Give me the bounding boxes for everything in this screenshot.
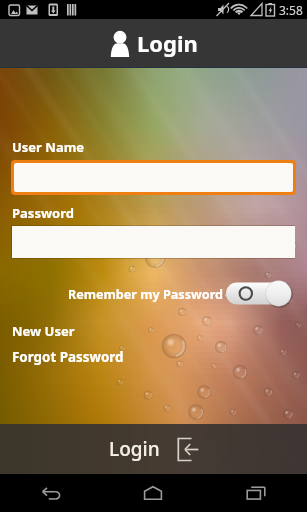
staticText: Remember my Password [68, 286, 223, 303]
staticText: Login [137, 28, 198, 58]
button[interactable]: New User [12, 322, 75, 340]
button[interactable] [226, 280, 292, 307]
button[interactable]: Forgot Password [12, 348, 124, 366]
staticText: User Name [12, 138, 85, 156]
staticText: Login [109, 436, 160, 462]
staticText: 3:58 [279, 2, 303, 18]
button[interactable]: Login [0, 424, 307, 474]
button[interactable]: Home [123, 474, 183, 512]
button[interactable]: Recents [226, 474, 286, 512]
button[interactable]: Back [21, 474, 81, 512]
button[interactable] [14, 163, 293, 192]
staticText: Password [12, 204, 74, 222]
